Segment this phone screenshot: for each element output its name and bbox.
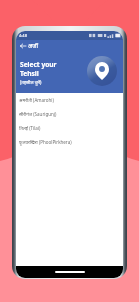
button[interactable]: अमरौती (Amarohi) — [16, 93, 123, 107]
staticText: Select your — [20, 60, 57, 69]
staticText: सौरीगंज (Saurigunj) — [19, 111, 57, 117]
button[interactable]: तिलई (Tilai) — [16, 121, 123, 135]
staticText: फूलपरखिरा (PhoolPirkhera) — [19, 139, 72, 145]
staticText: अर्जी — [28, 42, 38, 49]
staticText: 4:48 — [19, 33, 27, 38]
button[interactable]: फूलपरखिरा (PhoolPirkhera) — [16, 135, 123, 149]
button[interactable]: Back — [18, 41, 27, 50]
staticText: (तहसील चुनें) — [20, 79, 42, 85]
staticText: तिलई (Tilai) — [19, 125, 41, 131]
button[interactable]: सौरीगंज (Saurigunj) — [16, 107, 123, 121]
staticText: Tehsil — [20, 69, 39, 78]
staticText: अमरौती (Amarohi) — [19, 97, 54, 103]
